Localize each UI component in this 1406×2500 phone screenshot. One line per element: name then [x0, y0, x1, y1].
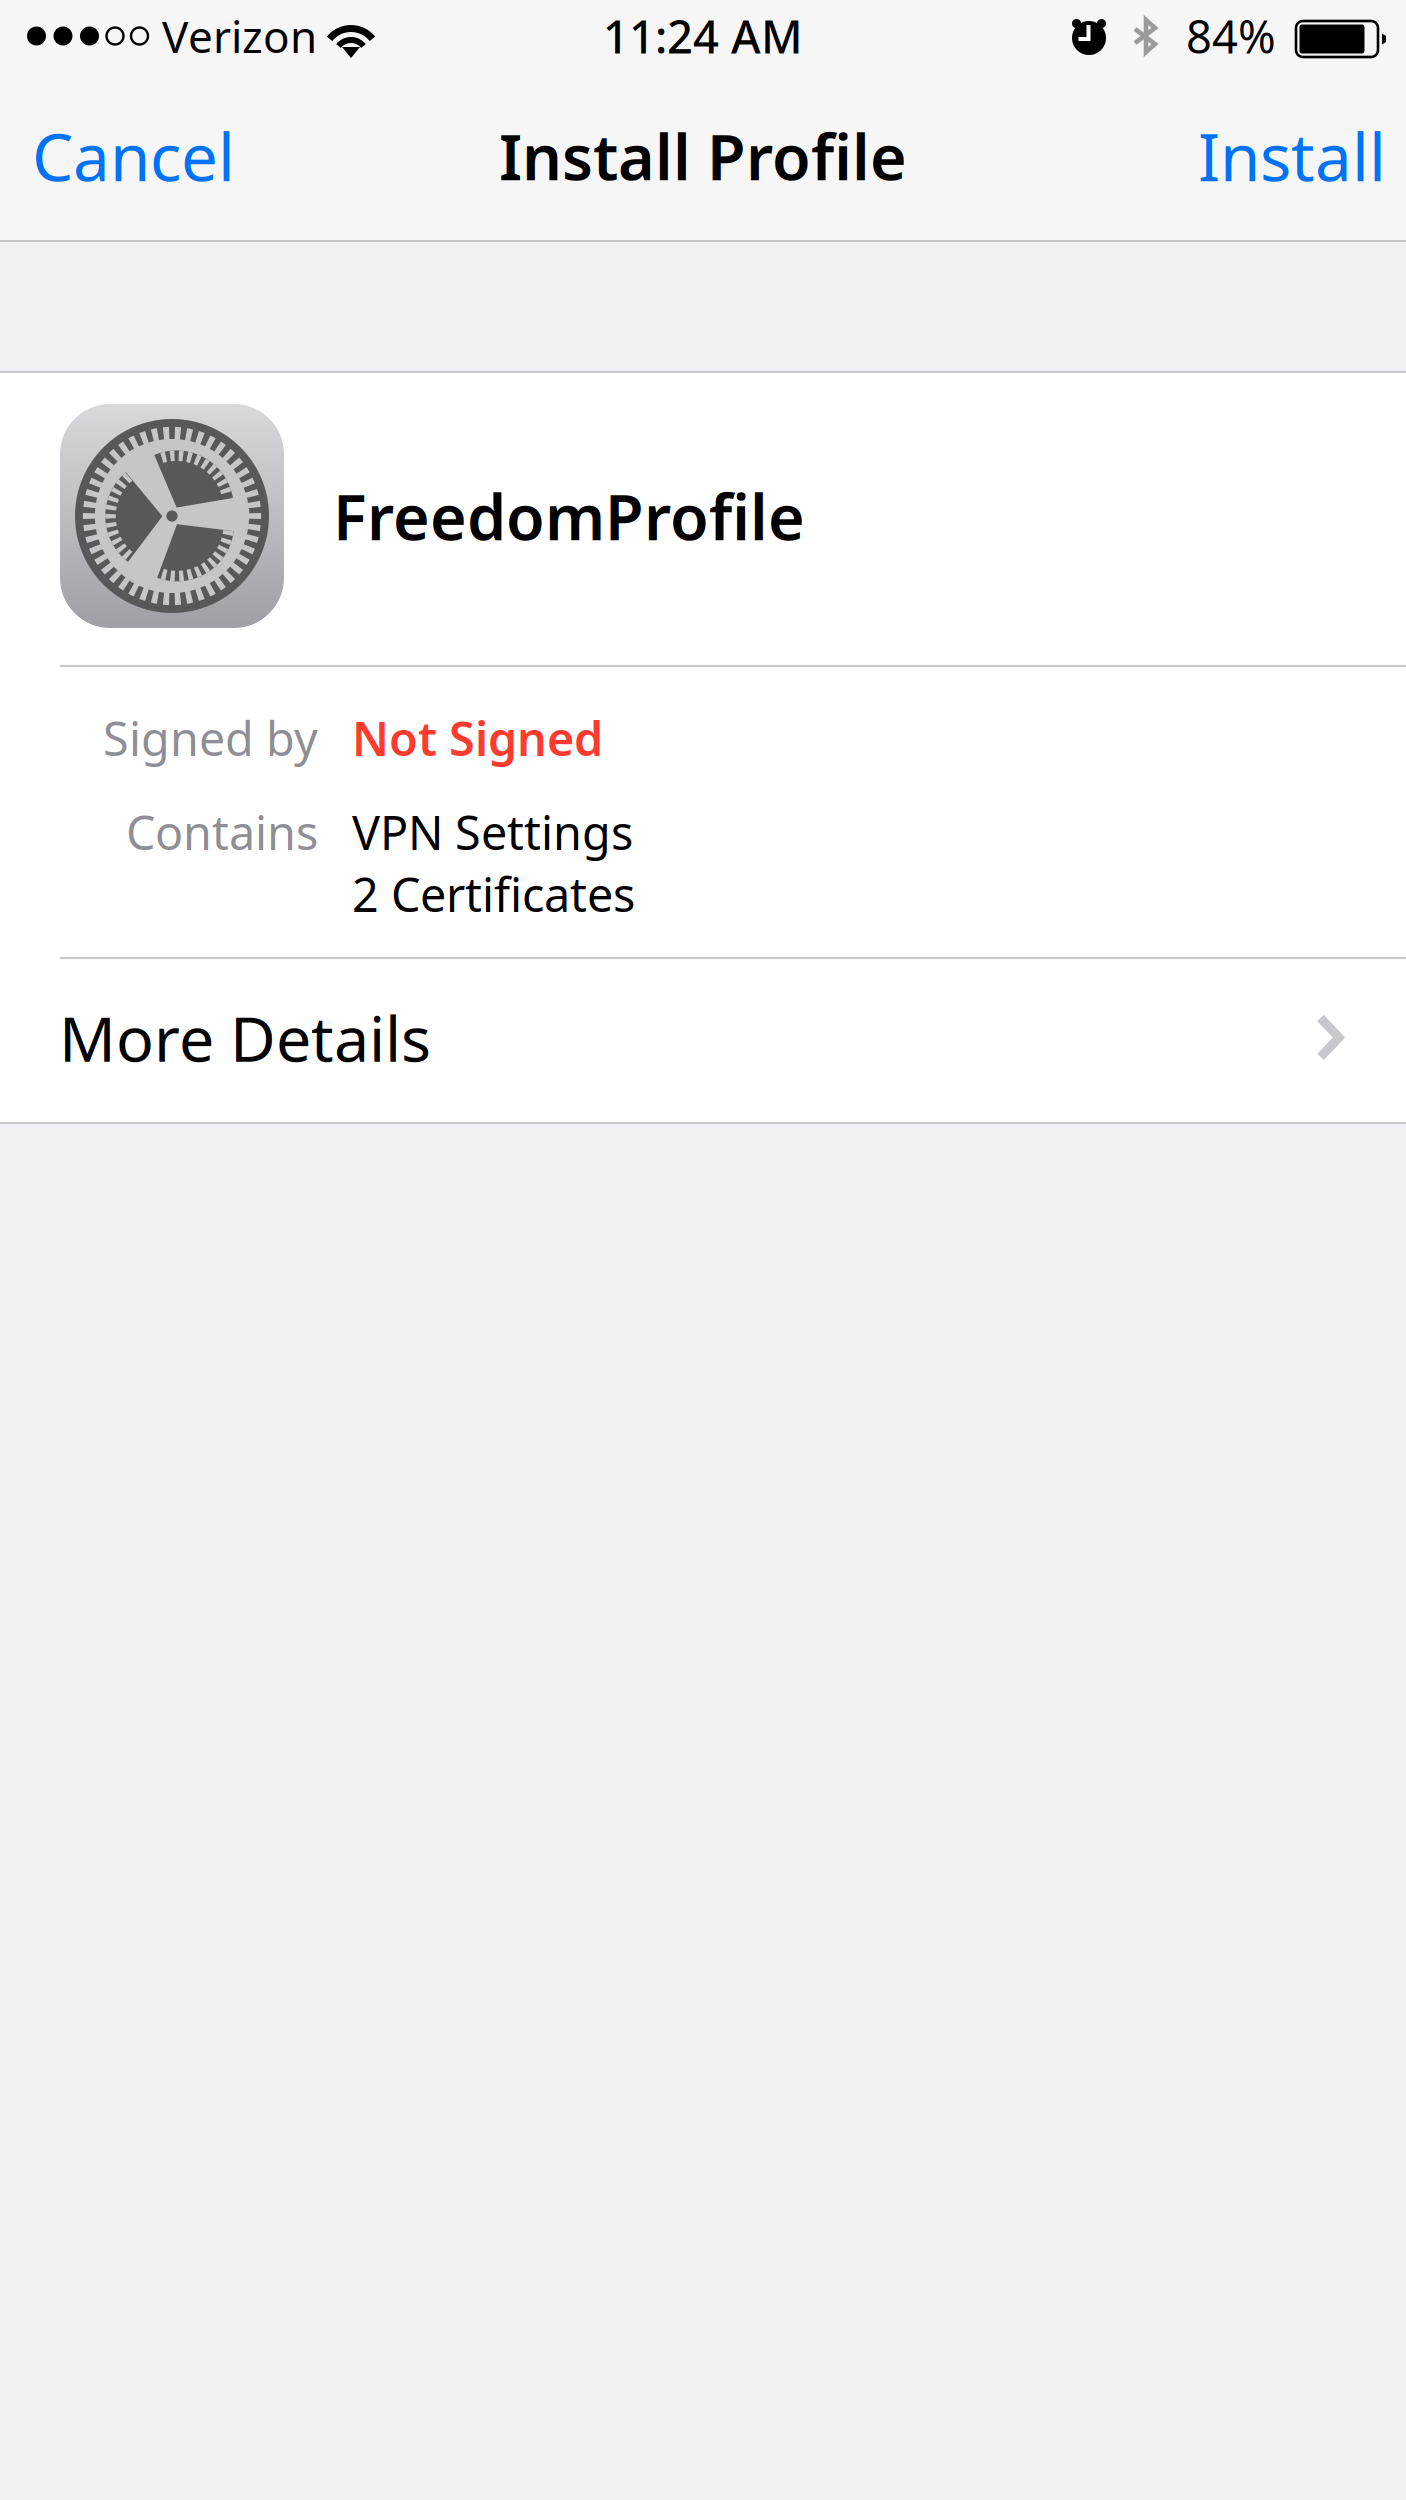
staticText: FreedomProfile — [333, 474, 805, 558]
staticText: Contains — [126, 801, 318, 863]
button[interactable]: More Details — [0, 959, 1406, 1122]
staticText: VPN Settings — [352, 801, 633, 863]
staticText: 84% — [1186, 6, 1276, 66]
staticText: Cancel — [32, 113, 235, 199]
staticText: Install Profile — [499, 114, 907, 198]
staticText: Install — [1198, 113, 1386, 199]
button[interactable]: Cancel — [0, 72, 267, 240]
staticText: Verizon — [162, 7, 317, 65]
staticText: 2 Certificates — [352, 863, 635, 925]
button[interactable]: Install — [1178, 72, 1406, 240]
staticText: Not Signed — [352, 707, 603, 769]
staticText: 11:24 AM — [603, 6, 803, 66]
staticText: More Details — [59, 996, 431, 1079]
staticText: Signed by — [103, 707, 318, 769]
